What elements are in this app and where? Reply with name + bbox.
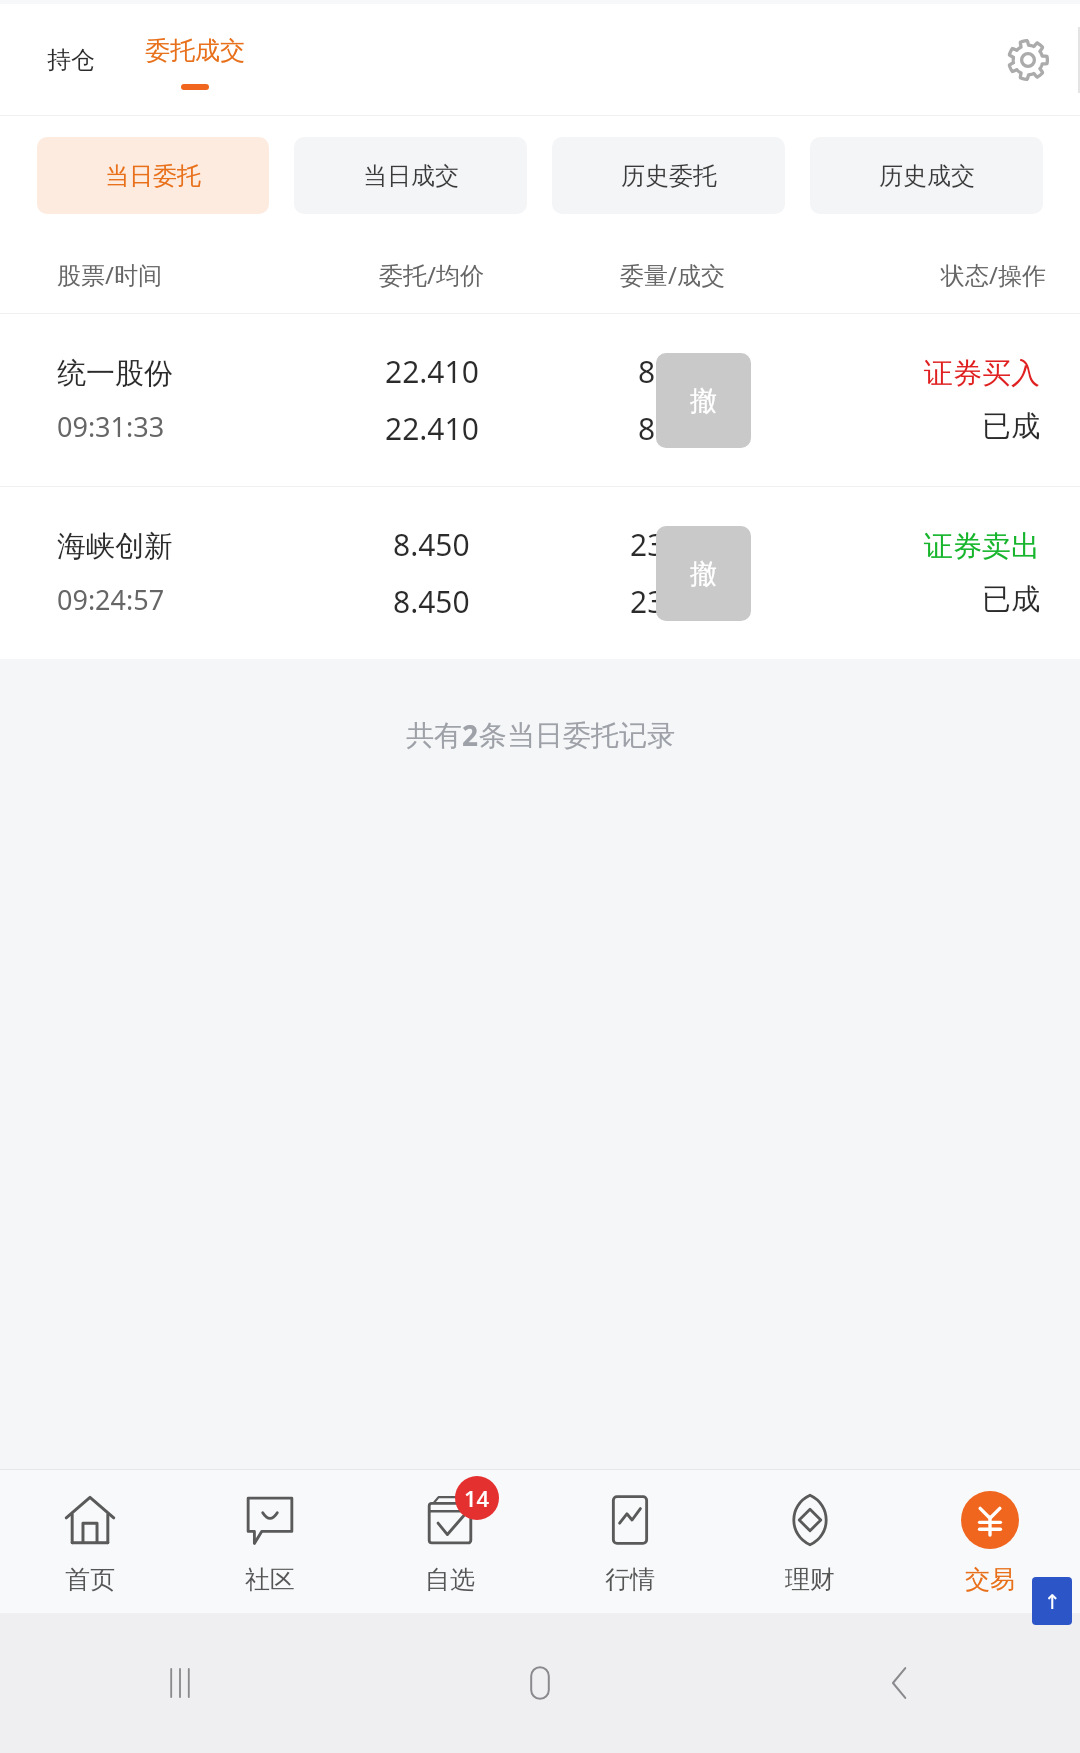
staticText: ↑ — [1044, 1590, 1061, 1613]
staticText: 8900 — [638, 408, 707, 449]
button[interactable]: Recents — [0, 1613, 360, 1753]
button[interactable]: 撤 — [656, 526, 751, 621]
staticText: 持仓 — [47, 45, 95, 75]
staticText: 已成 — [982, 408, 1040, 445]
button[interactable]: 历史委托 — [552, 137, 785, 214]
button[interactable]: 海峡创新 — [0, 487, 1080, 659]
staticText: 共有 — [406, 718, 462, 753]
staticText: 22.410 — [385, 351, 479, 392]
button[interactable]: 首页 — [0, 1470, 180, 1613]
staticText: 09:31:33 — [57, 408, 165, 445]
button[interactable]: 持仓 — [43, 35, 99, 85]
staticText: 当日成交 — [363, 161, 459, 191]
button[interactable]: 行情 — [540, 1470, 720, 1613]
button[interactable]: 撤 — [656, 353, 751, 448]
staticText: 行情 — [605, 1564, 655, 1595]
button[interactable]: 当日委托 — [37, 137, 269, 214]
button[interactable]: 交易 — [900, 1470, 1080, 1613]
button[interactable]: 理财 — [720, 1470, 900, 1613]
staticText: 股票/时间 — [57, 258, 311, 291]
staticText: 统一股份 — [57, 355, 173, 392]
staticText: 历史委托 — [621, 161, 717, 191]
button[interactable]: 14 — [360, 1470, 540, 1613]
staticText: 委托成交 — [145, 35, 245, 66]
button[interactable]: Home — [360, 1613, 720, 1753]
staticText: 8.450 — [393, 581, 470, 622]
staticText: 自选 — [425, 1564, 475, 1595]
staticText: 23700 — [630, 524, 716, 565]
staticText: 委托/均价 — [311, 258, 552, 291]
staticText: 交易 — [965, 1564, 1015, 1595]
staticText: 22.410 — [385, 408, 479, 449]
staticText: 首页 — [65, 1564, 115, 1595]
staticText: 历史成交 — [879, 161, 975, 191]
button[interactable]: 委托成交 — [141, 29, 249, 72]
button[interactable]: ↑ — [1032, 1577, 1072, 1625]
staticText: 8900 — [638, 351, 707, 392]
staticText: 撤 — [690, 384, 717, 418]
staticText: 2 — [462, 716, 479, 754]
staticText: 8.450 — [393, 524, 470, 565]
staticText: 状态/操作 — [793, 258, 1046, 291]
staticText: 证券卖出 — [924, 528, 1040, 565]
staticText: 09:24:57 — [57, 581, 165, 618]
button[interactable]: Settings — [998, 30, 1058, 90]
button[interactable]: 当日成交 — [294, 137, 527, 214]
staticText: 条当日委托记录 — [479, 718, 675, 753]
staticText: 撤 — [690, 557, 717, 591]
staticText: 23700 — [630, 581, 716, 622]
staticText: 证券买入 — [924, 355, 1040, 392]
staticText: 社区 — [245, 1564, 295, 1595]
staticText: 已成 — [982, 581, 1040, 618]
button[interactable]: Back — [720, 1613, 1080, 1753]
staticText: 理财 — [785, 1564, 835, 1595]
button[interactable]: 历史成交 — [810, 137, 1043, 214]
button[interactable]: 社区 — [180, 1470, 360, 1613]
button[interactable]: 统一股份 — [0, 314, 1080, 486]
staticText: 海峡创新 — [57, 528, 173, 565]
staticText: 委量/成交 — [552, 258, 793, 291]
staticText: 14 — [464, 1483, 490, 1513]
staticText: 当日委托 — [105, 161, 201, 191]
